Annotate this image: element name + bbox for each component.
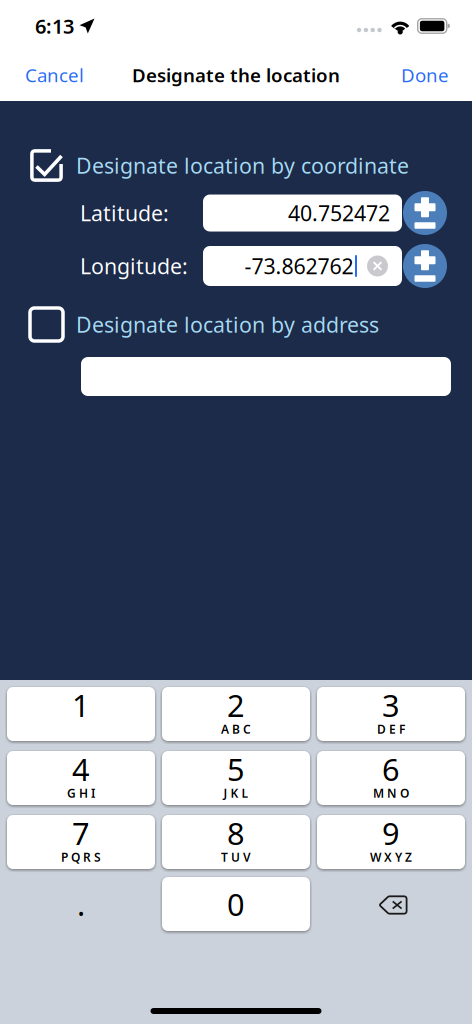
staticText: A B C [221,721,251,737]
button[interactable]: Delete [317,877,465,931]
staticText: J K L [223,785,248,801]
button[interactable]: 2 [162,687,310,741]
staticText: Cancel [25,63,84,87]
staticText: Designate location by address [76,310,379,339]
staticText: 4 [72,749,90,789]
button[interactable]: Designate location by coordinate [0,149,423,182]
staticText: . [77,884,85,924]
staticText: G H I [67,785,95,801]
staticText: Designate location by coordinate [76,151,409,180]
staticText: -73.862762 [244,252,353,280]
button[interactable]: 9 [317,815,465,869]
staticText: Latitude: [80,199,169,227]
staticText: T U V [221,849,251,865]
button[interactable]: 5 [162,751,310,805]
button[interactable]: 1 [7,687,155,741]
button[interactable]: 7 [7,815,155,869]
button[interactable]: 8 [162,815,310,869]
staticText: P Q R S [61,849,101,865]
button[interactable]: 6 [317,751,465,805]
staticText: 6:13 [35,13,74,39]
staticText: 9 [382,813,400,853]
button[interactable]: 3 [317,687,465,741]
staticText: 1 [72,685,90,725]
button[interactable]: 4 [7,751,155,805]
staticText: Done [401,63,449,87]
staticText: 5 [227,749,245,789]
staticText: 0 [227,884,245,924]
staticText: 7 [72,813,90,853]
staticText: 40.752472 [288,199,390,227]
staticText: D E F [377,721,405,737]
staticText: 2 [227,685,245,725]
staticText: 3 [382,685,400,725]
button[interactable]: Cancel [0,52,100,98]
button[interactable]: Designate location by address [0,308,393,341]
staticText: W X Y Z [370,849,412,865]
button[interactable]: Clear text [367,255,388,276]
staticText: Longitude: [80,252,188,280]
button[interactable]: . [7,877,155,931]
staticText: M N O [373,785,409,801]
button[interactable]: 0 [162,877,310,931]
staticText: 8 [227,813,245,853]
button[interactable]: Done [385,52,472,98]
button[interactable]: Adjust value [403,191,447,235]
staticText: 6 [382,749,400,789]
staticText: Designate the location [132,63,340,87]
button[interactable]: Adjust value [403,244,447,288]
